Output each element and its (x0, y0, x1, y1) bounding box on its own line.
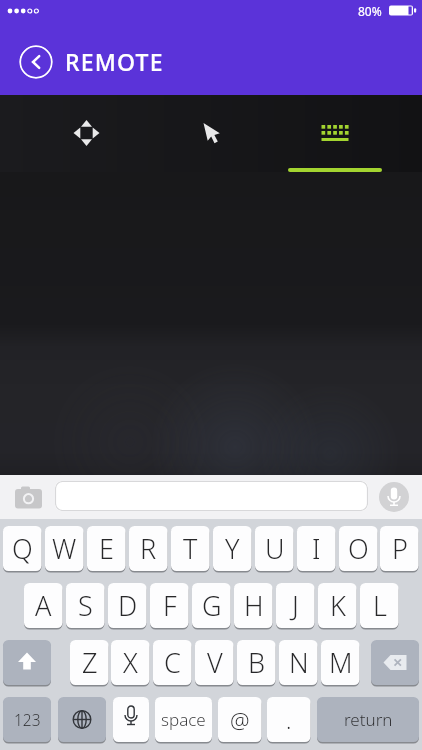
button[interactable] (12, 485, 46, 511)
staticText: H (244, 587, 264, 624)
button[interactable]: P (380, 526, 419, 573)
staticText: P (392, 530, 408, 567)
staticText: C (164, 644, 181, 681)
button[interactable] (281, 95, 422, 172)
button[interactable]: K (318, 583, 357, 630)
button[interactable] (371, 640, 419, 687)
button[interactable]: S (66, 583, 105, 630)
staticText: M (329, 644, 353, 681)
staticText: K (330, 587, 346, 624)
button[interactable] (3, 640, 51, 687)
button[interactable]: D (108, 583, 147, 630)
button[interactable]: Z (70, 640, 109, 687)
staticText: S (78, 587, 93, 624)
staticText: J (292, 587, 299, 624)
staticText: space (161, 708, 206, 731)
button[interactable]: B (237, 640, 276, 687)
staticText: Y (225, 530, 240, 567)
staticText: A (35, 587, 52, 624)
button[interactable]: I (297, 526, 336, 573)
button[interactable] (379, 482, 409, 512)
staticText: R (140, 530, 157, 567)
staticText: REMOTE (65, 46, 164, 77)
button[interactable]: M (321, 640, 360, 687)
staticText: U (265, 530, 285, 567)
button[interactable]: O (339, 526, 378, 573)
staticText: Z (82, 644, 98, 681)
staticText: B (248, 644, 266, 681)
staticText: return (344, 708, 393, 731)
button[interactable]: space (155, 697, 212, 744)
button[interactable]: T (171, 526, 210, 573)
staticText: F (163, 587, 177, 624)
staticText: O (348, 530, 369, 567)
button[interactable]: E (87, 526, 126, 573)
button[interactable]: W (45, 526, 84, 573)
button[interactable] (58, 697, 106, 744)
button[interactable] (113, 697, 149, 744)
staticText: N (289, 644, 309, 681)
staticText: . (286, 705, 292, 735)
staticText: W (52, 530, 77, 567)
button[interactable]: Y (213, 526, 252, 573)
button[interactable] (0, 95, 140, 172)
button[interactable]: A (24, 583, 63, 630)
button[interactable]: . (267, 697, 311, 744)
staticText: I (312, 530, 321, 567)
staticText: T (183, 530, 198, 567)
staticText: D (118, 587, 138, 624)
button[interactable]: L (360, 583, 399, 630)
button[interactable]: 123 (3, 697, 51, 744)
button[interactable] (19, 45, 53, 79)
staticText: X (123, 644, 138, 681)
button[interactable]: G (192, 583, 231, 630)
staticText: E (99, 530, 114, 567)
button[interactable]: V (195, 640, 234, 687)
button[interactable]: U (255, 526, 294, 573)
staticText: 123 (14, 709, 41, 730)
button[interactable]: return (317, 697, 419, 744)
staticText: Q (12, 530, 33, 567)
button[interactable]: H (234, 583, 273, 630)
button[interactable]: R (129, 526, 168, 573)
button[interactable]: N (279, 640, 318, 687)
staticText: @ (230, 705, 250, 735)
staticText: 80% (358, 3, 382, 19)
button[interactable]: C (153, 640, 192, 687)
button[interactable]: F (150, 583, 189, 630)
button[interactable]: X (111, 640, 150, 687)
staticText: L (373, 587, 387, 624)
button[interactable]: @ (218, 697, 262, 744)
button[interactable]: J (276, 583, 315, 630)
button[interactable]: Q (3, 526, 42, 573)
button[interactable] (140, 95, 281, 172)
staticText: V (207, 644, 223, 681)
button[interactable] (55, 481, 368, 511)
staticText: G (202, 587, 222, 624)
